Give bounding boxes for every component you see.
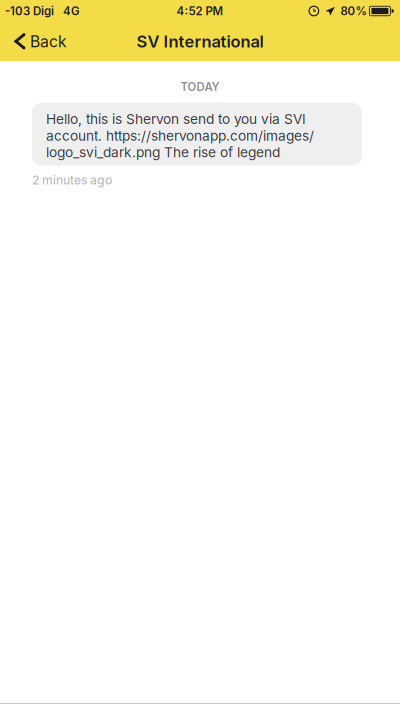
staticText: Back [30, 32, 67, 51]
staticText: SV International [136, 31, 263, 51]
staticText: TODAY [180, 80, 219, 94]
staticText: -103 Digi [5, 4, 54, 18]
staticText: Hello, this is Shervon send to you via S… [46, 111, 314, 161]
staticText: 2 minutes ago [32, 173, 112, 187]
staticText: 80% [340, 4, 367, 18]
staticText: 4G [63, 4, 80, 18]
staticText: 4:52 PM [176, 4, 223, 18]
button[interactable]: Hello, this is Shervon send to you via S… [32, 103, 362, 166]
button[interactable]: Back [0, 22, 79, 61]
